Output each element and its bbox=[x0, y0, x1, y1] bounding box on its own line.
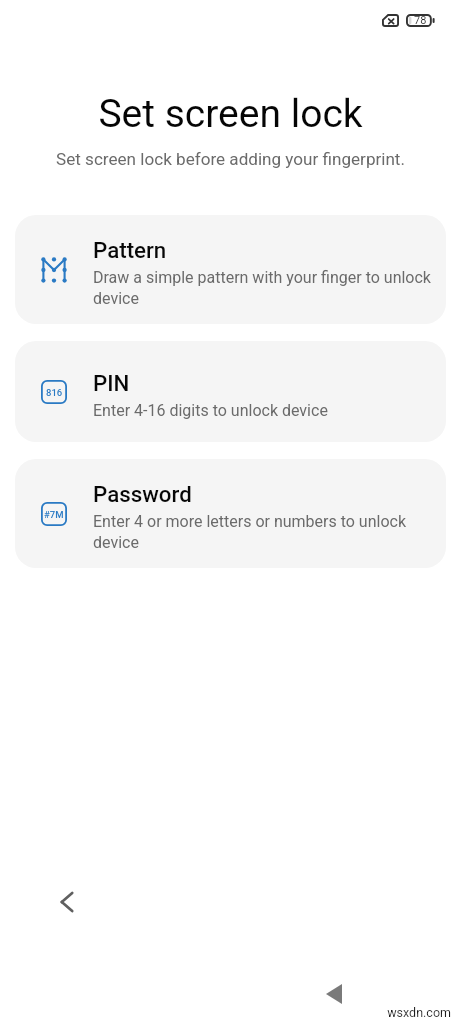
staticText: Pattern bbox=[93, 237, 167, 263]
staticText: 78 bbox=[414, 14, 427, 26]
button[interactable]: #7M bbox=[15, 459, 446, 568]
button[interactable]: 816 bbox=[15, 341, 446, 442]
staticText: 816 bbox=[46, 387, 63, 398]
staticText: #7M bbox=[44, 509, 64, 520]
staticText: Enter 4-16 digits to unlock device bbox=[93, 401, 328, 420]
button[interactable]: Navigate back bbox=[310, 970, 358, 1018]
staticText: Enter 4 or more letters or numbers to un… bbox=[93, 512, 436, 552]
button[interactable]: Pattern bbox=[15, 215, 446, 324]
staticText: wsxdn.com bbox=[387, 1005, 451, 1020]
staticText: Set screen lock bbox=[0, 91, 461, 137]
staticText: Draw a simple pattern with your finger t… bbox=[93, 268, 436, 308]
staticText: PIN bbox=[93, 370, 130, 396]
staticText: Password bbox=[93, 481, 192, 507]
button[interactable]: Back bbox=[46, 881, 88, 923]
staticText: Set screen lock before adding your finge… bbox=[0, 149, 461, 169]
